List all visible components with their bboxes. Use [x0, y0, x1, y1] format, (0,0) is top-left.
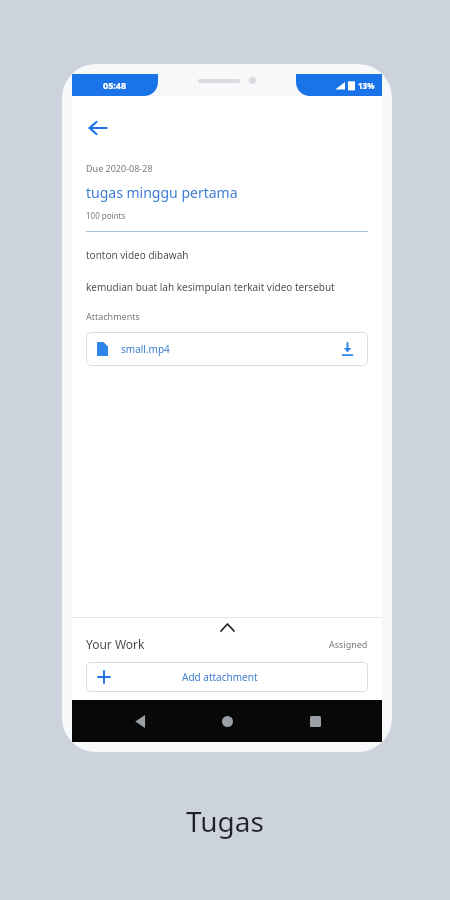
- staticText: kemudian buat lah kesimpulan terkait vid…: [86, 280, 335, 294]
- button[interactable]: Download: [337, 339, 357, 359]
- button[interactable]: Recent apps: [295, 701, 335, 741]
- staticText: Tugas: [186, 802, 264, 840]
- staticText: 05:48: [103, 79, 127, 91]
- staticText: 100 points: [86, 210, 126, 221]
- staticText: Due 2020-08-28: [86, 162, 153, 174]
- staticText: tonton video dibawah: [86, 248, 189, 262]
- staticText: Add attachment: [182, 670, 258, 684]
- staticText: Your Work: [86, 636, 145, 652]
- staticText: 13%: [358, 80, 375, 91]
- staticText: Attachments: [86, 310, 140, 322]
- button[interactable]: Home: [207, 701, 247, 741]
- button[interactable]: Add attachment: [86, 662, 368, 692]
- staticText: small.mp4: [121, 342, 170, 356]
- staticText: Assigned: [329, 638, 368, 650]
- staticText: tugas minggu pertama: [86, 183, 238, 202]
- button[interactable]: Back: [78, 108, 118, 148]
- button[interactable]: small.mp4: [86, 332, 368, 366]
- button[interactable]: Back: [120, 701, 160, 741]
- button[interactable]: Expand: [86, 618, 368, 636]
